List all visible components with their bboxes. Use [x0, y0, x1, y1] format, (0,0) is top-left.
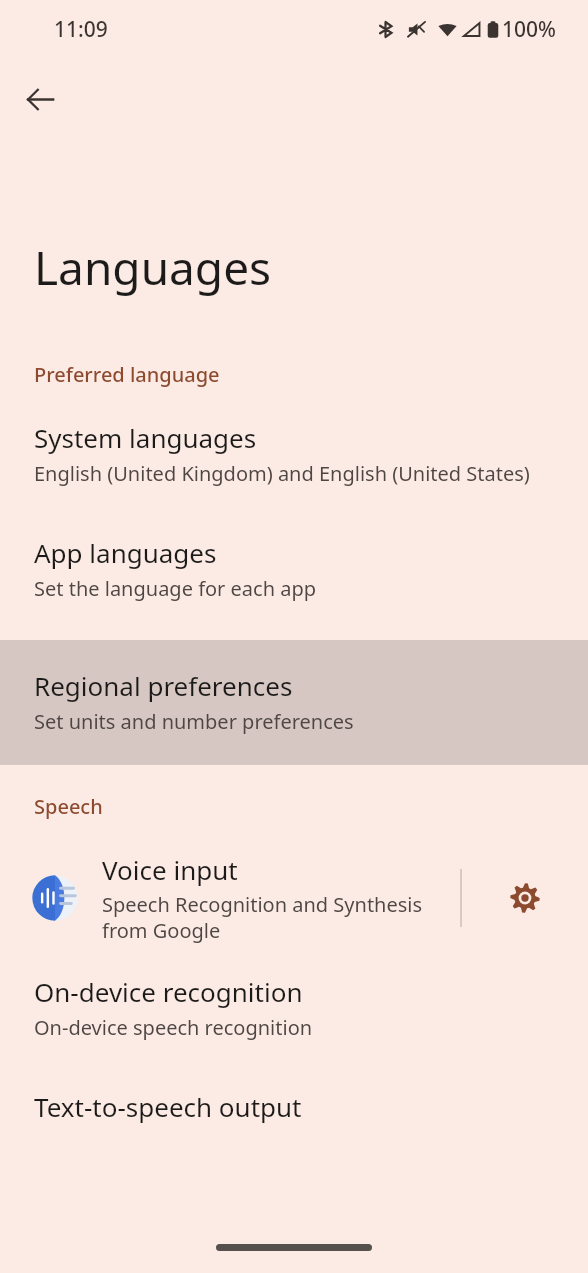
staticText: Voice input: [102, 852, 238, 887]
staticText: Set the language for each app: [34, 575, 317, 602]
staticText: Regional preferences: [34, 668, 293, 703]
button[interactable]: App languages: [0, 535, 588, 602]
staticText: Languages: [34, 236, 272, 299]
staticText: System languages: [34, 420, 257, 455]
button[interactable]: Text-to-speech output: [0, 1089, 588, 1124]
button[interactable]: Back: [14, 73, 66, 125]
staticText: English (United Kingdom) and English (Un…: [34, 460, 530, 487]
staticText: 11:09: [54, 15, 108, 44]
button[interactable]: Voice input settings: [462, 842, 588, 954]
staticText: 100%: [502, 15, 556, 44]
staticText: Preferred language: [34, 361, 220, 388]
staticText: Set units and number preferences: [34, 708, 354, 735]
button[interactable]: Regional preferences: [0, 640, 588, 765]
button[interactable]: Voice input: [0, 852, 460, 944]
staticText: Speech: [34, 793, 103, 820]
staticText: On-device speech recognition: [34, 1014, 313, 1041]
staticText: Text-to-speech output: [34, 1089, 302, 1124]
staticText: On-device recognition: [34, 974, 303, 1009]
staticText: Speech Recognition and Synthesis from Go…: [102, 891, 423, 944]
button[interactable]: On-device recognition: [0, 974, 588, 1041]
staticText: App languages: [34, 535, 217, 570]
button[interactable]: System languages: [0, 420, 588, 487]
